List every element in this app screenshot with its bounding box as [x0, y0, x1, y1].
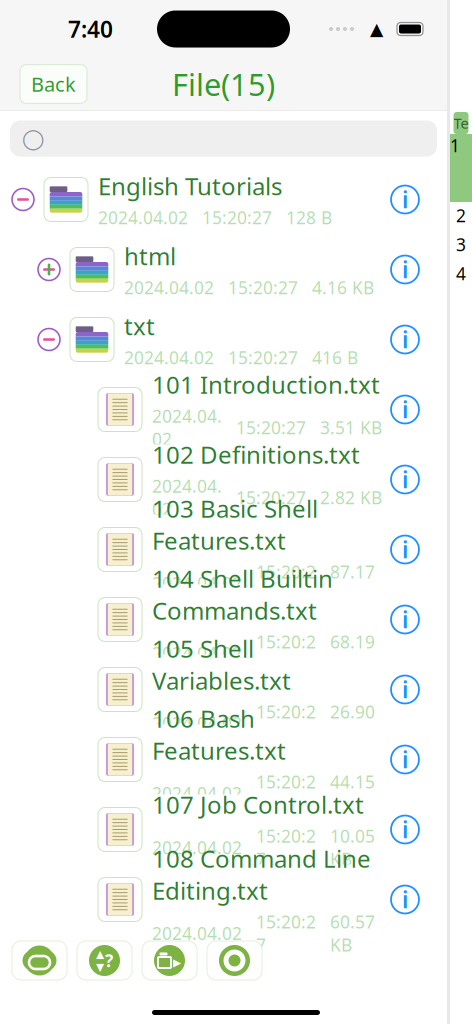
button[interactable]: Cloud: [12, 941, 67, 980]
staticText: i: [402, 184, 408, 214]
staticText: 4.16 KB: [312, 276, 374, 299]
staticText: 10.05 KB: [330, 824, 375, 870]
staticText: 106 Bash Features.txt: [152, 703, 286, 766]
staticText: 2024.04.02: [152, 572, 242, 595]
staticText: i: [402, 744, 408, 774]
button[interactable]: 104 Shell Builtin Commands.txt: [0, 584, 447, 654]
staticText: 2024.04.02: [152, 782, 242, 805]
staticText: 3: [456, 233, 466, 256]
staticText: 2024.04.02: [152, 712, 242, 735]
staticText: 2024.04.02: [98, 206, 188, 229]
staticText: 105 Shell Variables.txt: [152, 633, 291, 696]
staticText: 15:20:27: [202, 206, 272, 229]
button[interactable]: Settings: [207, 941, 262, 980]
button[interactable]: 101 Introduction.txt: [0, 374, 447, 444]
staticText: i: [402, 534, 408, 564]
button[interactable]: 107 Job Control.txt: [0, 794, 447, 864]
staticText: 2024.04.02: [152, 836, 242, 859]
staticText: i: [402, 324, 408, 354]
staticText: 68.19 KB: [330, 630, 375, 676]
staticText: ▲: [96, 948, 104, 960]
button[interactable]: Back: [20, 65, 87, 103]
staticText: File(15): [172, 64, 275, 104]
staticText: i: [402, 254, 408, 284]
staticText: 2: [456, 204, 466, 227]
staticText: 2024.04.02: [152, 474, 222, 520]
button[interactable]: 106 Bash Features.txt: [0, 724, 447, 794]
button[interactable]: 108 Command Line Editing.txt: [0, 864, 447, 934]
staticText: 128 B: [286, 206, 332, 229]
staticText: i: [402, 394, 408, 424]
staticText: 15:20:27: [256, 910, 316, 956]
staticText: 15:20:27: [228, 346, 298, 369]
staticText: i: [402, 604, 408, 634]
staticText: 15:20:27: [256, 770, 316, 816]
staticText: 1: [450, 134, 460, 157]
staticText: 87.17 KB: [330, 560, 375, 606]
staticText: 15:20:27: [256, 700, 316, 746]
staticText: 416 B: [312, 346, 358, 369]
staticText: 2024.04.02: [152, 404, 222, 450]
staticText: 2.82 KB: [320, 486, 382, 509]
staticText: i: [402, 464, 408, 494]
staticText: ◯: [22, 127, 44, 150]
staticText: 3.51 KB: [320, 416, 382, 439]
staticText: ▶: [173, 956, 181, 968]
staticText: 103 Basic Shell Features.txt: [152, 493, 318, 556]
staticText: 15:20:27: [228, 276, 298, 299]
staticText: 101 Introduction.txt: [152, 368, 380, 400]
button[interactable]: Transfer: [77, 941, 132, 980]
staticText: 15:20:27: [236, 416, 306, 439]
staticText: 2024.04.02: [124, 346, 214, 369]
staticText: 102 Definitions.txt: [152, 438, 360, 470]
button[interactable]: 102 Definitions.txt: [0, 444, 447, 514]
staticText: 4: [456, 262, 466, 285]
staticText: 108 Command Line Editing.txt: [152, 843, 371, 906]
staticText: i: [402, 674, 408, 704]
button[interactable]: English Tutorials: [0, 164, 447, 234]
staticText: ▼: [96, 961, 104, 973]
staticText: 15:20:27: [236, 486, 306, 509]
staticText: 26.90 KB: [330, 700, 375, 746]
staticText: i: [402, 884, 408, 914]
staticText: ▲: [370, 19, 383, 39]
staticText: i: [402, 814, 408, 844]
button[interactable]: html: [0, 234, 447, 304]
button[interactable]: txt: [0, 304, 447, 374]
button[interactable]: 103 Basic Shell Features.txt: [0, 514, 447, 584]
staticText: html: [124, 240, 176, 272]
staticText: ?: [105, 949, 113, 972]
staticText: 15:20:27: [256, 824, 316, 870]
staticText: txt: [124, 310, 155, 342]
button[interactable]: 105 Shell Variables.txt: [0, 654, 447, 724]
staticText: 104 Shell Builtin Commands.txt: [152, 563, 333, 626]
staticText: 15:20:27: [256, 560, 316, 606]
staticText: 60.57 KB: [330, 910, 375, 956]
staticText: 44.15 KB: [330, 770, 375, 816]
staticText: 15:20:27: [256, 630, 316, 676]
staticText: 107 Job Control.txt: [152, 788, 364, 820]
staticText: 7:40: [68, 14, 113, 44]
staticText: English Tutorials: [98, 170, 282, 202]
staticText: 2024.04.02: [152, 642, 242, 665]
staticText: 2024.04.02: [124, 276, 214, 299]
staticText: Te: [453, 113, 468, 133]
staticText: Back: [31, 71, 76, 97]
button[interactable]: Open folder: [142, 941, 197, 980]
staticText: 2024.04.02: [152, 922, 242, 945]
